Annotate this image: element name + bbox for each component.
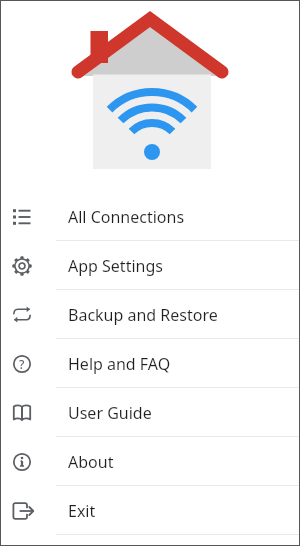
staticText: App Settings: [68, 255, 163, 277]
staticText: Exit: [68, 500, 96, 522]
staticText: All Connections: [68, 206, 185, 228]
button[interactable]: User Guide: [0, 388, 300, 437]
button[interactable]: App Settings: [0, 241, 300, 290]
button[interactable]: Exit: [0, 486, 300, 535]
button[interactable]: About: [0, 437, 300, 486]
staticText: User Guide: [68, 402, 152, 424]
staticText: ?: [19, 356, 25, 372]
button[interactable]: ?: [0, 339, 300, 388]
button[interactable]: Backup and Restore: [0, 290, 300, 339]
staticText: Backup and Restore: [68, 304, 218, 326]
staticText: About: [68, 451, 114, 473]
staticText: Help and FAQ: [68, 353, 171, 375]
button[interactable]: All Connections: [0, 192, 300, 241]
